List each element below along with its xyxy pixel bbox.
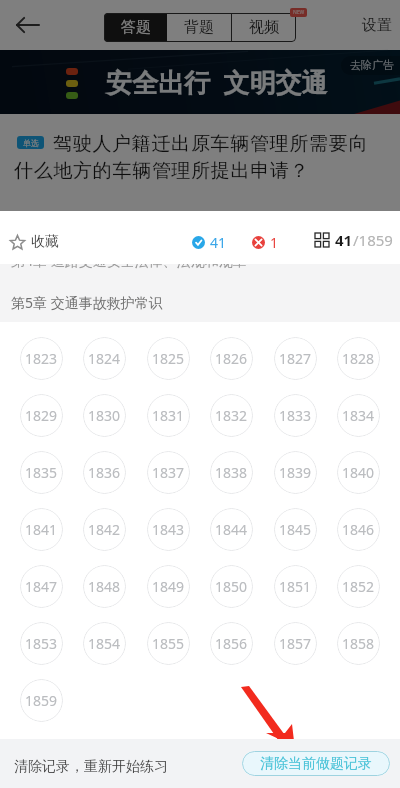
button[interactable]: 1847: [20, 565, 63, 608]
staticText: 驾驶人户籍迁出原车辆管理所需要向: [53, 132, 369, 156]
staticText: 1845: [279, 520, 312, 539]
staticText: 1828: [342, 349, 375, 368]
button[interactable]: 1838: [210, 451, 253, 494]
button[interactable]: 1855: [147, 622, 190, 665]
button[interactable]: 视频: [232, 13, 296, 42]
button[interactable]: 1849: [147, 565, 190, 608]
staticText: 41: [335, 230, 353, 250]
staticText: 1857: [279, 634, 312, 653]
button[interactable]: 1859: [20, 679, 63, 722]
staticText: 1848: [88, 577, 121, 596]
button[interactable]: 1857: [274, 622, 317, 665]
staticText: NEW: [293, 9, 305, 16]
staticText: 清除记录，重新开始练习: [14, 758, 168, 776]
button[interactable]: 1833: [274, 394, 317, 437]
button[interactable]: 1858: [337, 622, 380, 665]
button[interactable]: 清除当前做题记录: [242, 751, 390, 776]
staticText: 1842: [88, 520, 121, 539]
staticText: 1838: [215, 463, 248, 482]
staticText: 41: [210, 233, 227, 252]
button[interactable]: 1853: [20, 622, 63, 665]
staticText: 安全出行 文明交通: [106, 64, 328, 100]
button[interactable]: 设置: [362, 3, 392, 47]
button[interactable]: 1825: [147, 337, 190, 380]
staticText: 收藏: [31, 233, 59, 251]
button[interactable]: 1854: [83, 622, 126, 665]
button[interactable]: 1823: [20, 337, 63, 380]
staticText: 第5章 交通事故救护常识: [11, 293, 163, 312]
button[interactable]: 1842: [83, 508, 126, 551]
staticText: 1: [270, 233, 279, 252]
button[interactable]: 1845: [274, 508, 317, 551]
button[interactable]: 1840: [337, 451, 380, 494]
staticText: 1835: [25, 463, 58, 482]
staticText: 1831: [152, 406, 185, 425]
staticText: 1849: [152, 577, 185, 596]
button[interactable]: 1826: [210, 337, 253, 380]
staticText: 1840: [342, 463, 375, 482]
staticText: 1846: [342, 520, 375, 539]
button[interactable]: 1836: [83, 451, 126, 494]
staticText: 答题: [121, 18, 151, 37]
staticText: 1853: [25, 634, 58, 653]
staticText: 清除当前做题记录: [260, 755, 372, 773]
staticText: 1825: [152, 349, 185, 368]
button[interactable]: 1844: [210, 508, 253, 551]
button[interactable]: 1850: [210, 565, 253, 608]
staticText: 1847: [25, 577, 58, 596]
staticText: 1836: [88, 463, 121, 482]
staticText: 1851: [279, 577, 312, 596]
staticText: 1855: [152, 634, 185, 653]
staticText: 背题: [184, 18, 214, 37]
button[interactable]: 1835: [20, 451, 63, 494]
button[interactable]: 1834: [337, 394, 380, 437]
staticText: 1854: [88, 634, 121, 653]
button[interactable]: 1852: [337, 565, 380, 608]
button[interactable]: 1832: [210, 394, 253, 437]
button[interactable]: 1856: [210, 622, 253, 665]
button[interactable]: 1824: [83, 337, 126, 380]
staticText: 1843: [152, 520, 185, 539]
staticText: 1859: [25, 691, 58, 710]
staticText: 1833: [279, 406, 312, 425]
button[interactable]: 1851: [274, 565, 317, 608]
staticText: 什么地方的车辆管理所提出申请？: [14, 159, 310, 183]
staticText: 视频: [249, 18, 279, 37]
staticText: 单选: [23, 138, 39, 148]
button[interactable]: 答题: [104, 13, 167, 42]
button[interactable]: 1839: [274, 451, 317, 494]
button[interactable]: Back: [6, 3, 50, 47]
button[interactable]: 41: [315, 226, 393, 254]
staticText: 1850: [215, 577, 248, 596]
button[interactable]: 1828: [337, 337, 380, 380]
button[interactable]: 1827: [274, 337, 317, 380]
staticText: 1839: [279, 463, 312, 482]
button[interactable]: 1829: [20, 394, 63, 437]
staticText: 1832: [215, 406, 248, 425]
staticText: 1856: [215, 634, 248, 653]
staticText: 1829: [25, 406, 58, 425]
button[interactable]: 收藏: [10, 225, 59, 259]
button[interactable]: 1837: [147, 451, 190, 494]
staticText: 1823: [25, 349, 58, 368]
staticText: 1824: [88, 349, 121, 368]
button[interactable]: 去除广告: [350, 58, 394, 72]
button[interactable]: 背题: [167, 13, 231, 42]
staticText: 1841: [25, 520, 58, 539]
staticText: 1837: [152, 463, 185, 482]
button[interactable]: 1846: [337, 508, 380, 551]
staticText: 去除广告: [350, 58, 394, 72]
staticText: 1852: [342, 577, 375, 596]
staticText: 1834: [342, 406, 375, 425]
staticText: /1859: [353, 230, 393, 250]
staticText: 第4章 道路交通安全法律、法规和规章: [11, 264, 247, 270]
button[interactable]: 1841: [20, 508, 63, 551]
button[interactable]: 1848: [83, 565, 126, 608]
staticText: 1826: [215, 349, 248, 368]
staticText: 设置: [362, 16, 392, 35]
staticText: 1827: [279, 349, 312, 368]
button[interactable]: 1831: [147, 394, 190, 437]
button[interactable]: 1843: [147, 508, 190, 551]
staticText: 1830: [88, 406, 121, 425]
button[interactable]: 1830: [83, 394, 126, 437]
